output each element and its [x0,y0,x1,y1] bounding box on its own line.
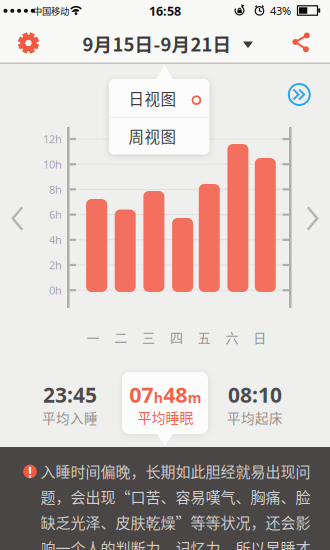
staticText: 一 [86,328,99,346]
staticText: 题，会出现“口苦、容易嘆气、胸痛、脸 [40,486,310,507]
staticText: 三 [142,328,155,346]
staticText: 缺乏光泽、皮肤乾燥”等等状况，还会影 [40,511,310,533]
staticText: 43% [270,3,291,18]
button[interactable]: 9月15日-9月21日 [65,21,265,64]
staticText: 9月15日-9月21日 [82,30,231,57]
staticText: 4h [49,232,62,247]
staticText: 8h [49,182,62,197]
staticText: 12h [43,131,62,146]
staticText: 响一个人的判断力、记忆力，所以早睡才 [40,537,310,550]
staticText: 入睡时间偏晚，长期如此胆经就易出现问 [40,460,310,482]
button[interactable]: Previous week [11,207,25,231]
button[interactable]: Jump to detail [287,82,311,106]
staticText: 0h [49,283,62,298]
staticText: 10h [43,157,62,172]
staticText: h [154,388,163,407]
staticText: 2h [49,257,62,272]
staticText: 16:58 [149,2,181,19]
staticText: 五 [198,328,211,346]
staticText: m [188,388,202,407]
button[interactable]: Next week [305,207,319,231]
staticText: 08:10 [228,380,282,409]
button[interactable]: 日视图 [109,80,209,117]
staticText: 日视图 [128,87,176,109]
staticText: 六 [225,328,238,346]
staticText: 23:45 [43,380,97,409]
staticText: 二 [114,328,127,346]
staticText: 周视图 [128,125,176,147]
staticText: 6h [49,207,62,222]
staticText: 平均入睡 [42,408,98,427]
staticText: 中国移动 [33,4,69,18]
staticText: 平均起床 [227,408,283,427]
staticText: 四 [170,328,183,346]
staticText: 平均睡眠 [137,407,193,427]
button[interactable]: Share [293,31,311,52]
button[interactable]: 周视图 [109,117,209,154]
staticText: 07 [129,380,153,409]
button[interactable]: Settings [15,30,41,56]
staticText: 日 [253,328,266,346]
staticText: 48 [163,380,187,409]
